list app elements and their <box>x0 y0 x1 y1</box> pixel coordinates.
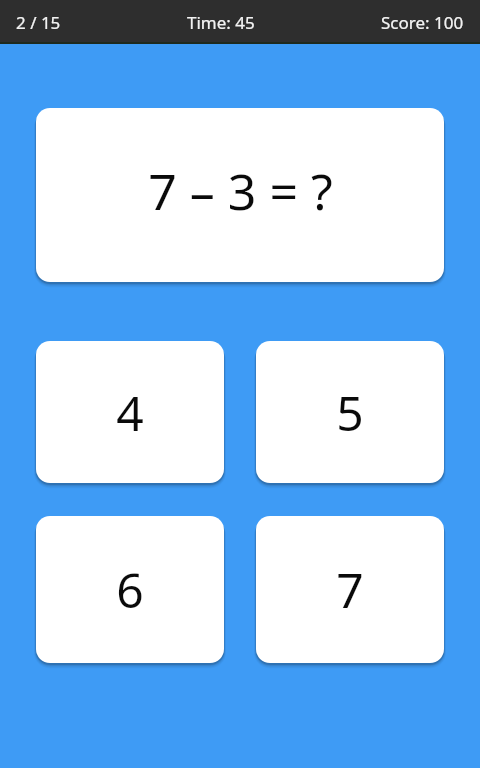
staticText: 6 <box>116 557 144 622</box>
button[interactable]: Answer 7 <box>256 516 444 663</box>
button[interactable]: Answer 6 <box>36 516 224 663</box>
button[interactable]: Answer 4 <box>36 341 224 483</box>
staticText: Time: 45 <box>187 11 255 34</box>
staticText: 2 / 15 <box>16 11 61 34</box>
button[interactable]: Answer 5 <box>256 341 444 483</box>
staticText: Score: 100 <box>381 11 464 34</box>
staticText: 5 <box>336 380 364 445</box>
staticText: 4 <box>116 380 144 445</box>
staticText: 7 <box>336 557 364 622</box>
staticText: 7 – 3 = ? <box>148 157 333 225</box>
